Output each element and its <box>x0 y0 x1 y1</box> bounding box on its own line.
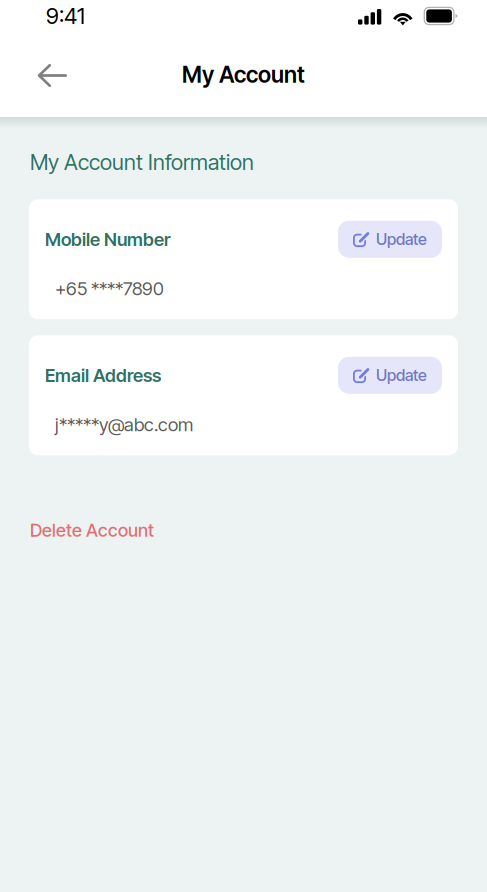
button[interactable]: Back <box>30 49 74 97</box>
button[interactable]: Update <box>338 357 442 394</box>
staticText: Delete Account <box>30 519 154 541</box>
button[interactable]: Update <box>338 221 442 258</box>
staticText: Update <box>376 366 427 385</box>
staticText: j*****y@abc.com <box>55 413 193 436</box>
staticText: My Account Information <box>30 149 254 175</box>
staticText: 9:41 <box>46 2 85 29</box>
staticText: My Account <box>182 61 305 88</box>
staticText: Update <box>376 230 427 249</box>
staticText: Email Address <box>45 364 161 386</box>
button[interactable]: Delete Account <box>0 455 487 541</box>
staticText: Mobile Number <box>45 228 171 250</box>
staticText: +65 ****7890 <box>55 277 164 300</box>
